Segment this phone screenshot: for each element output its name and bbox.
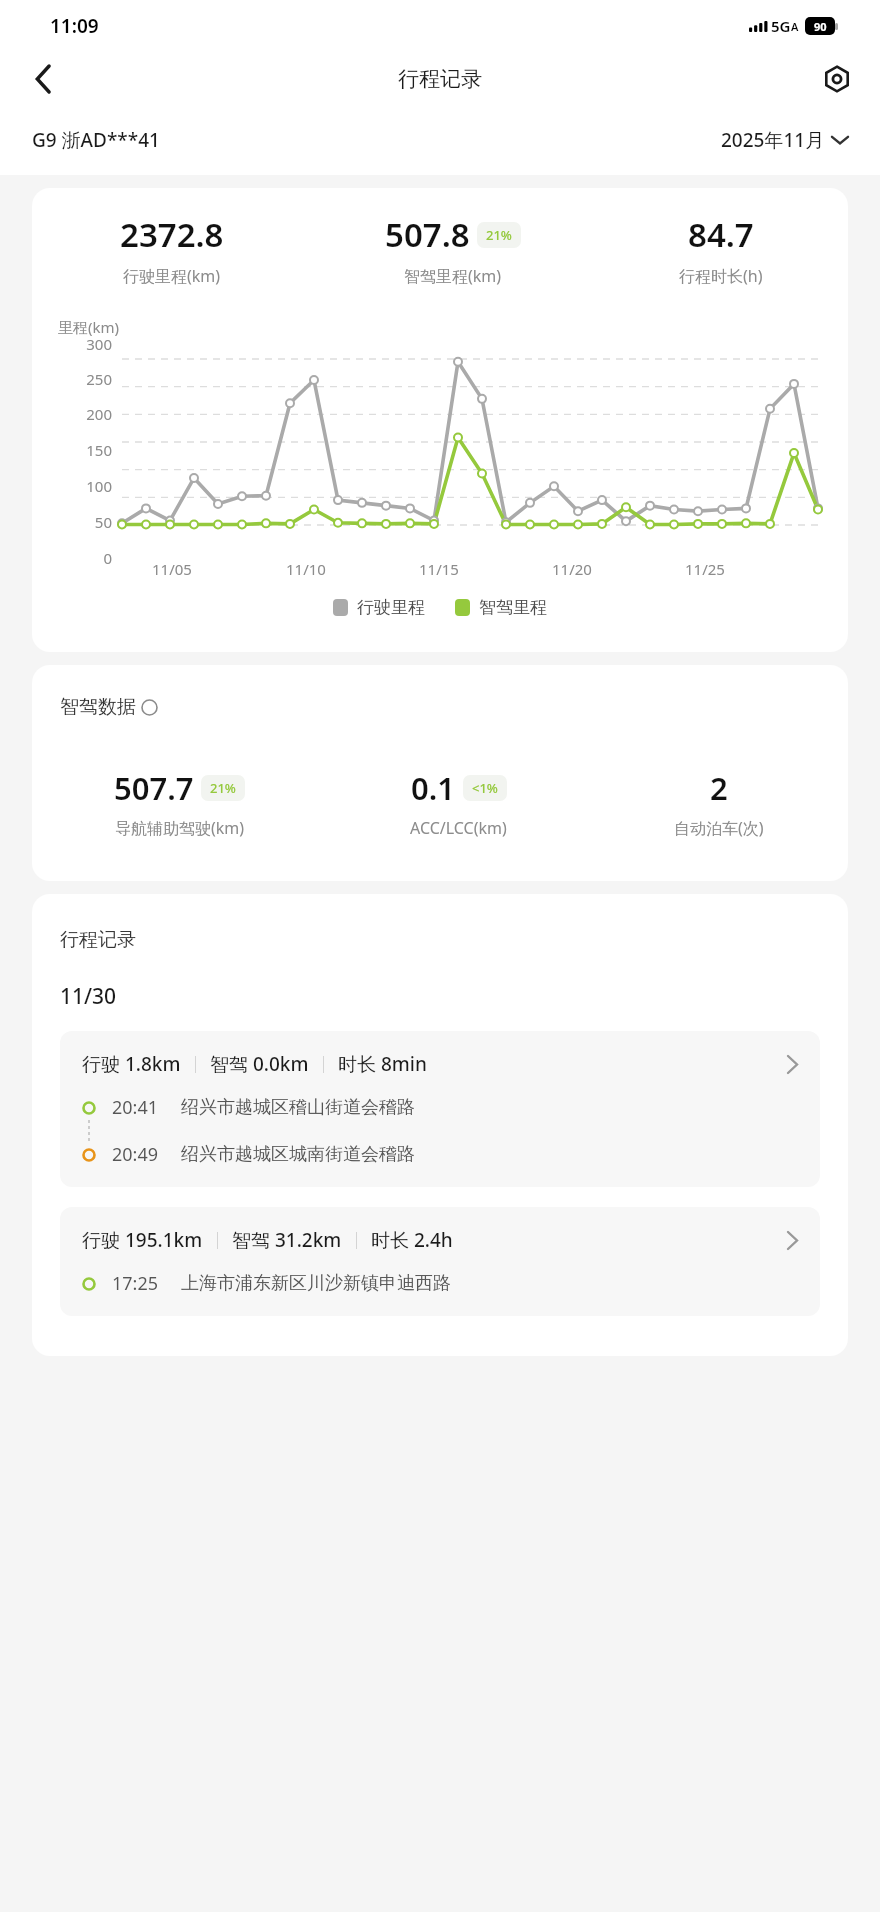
staticText: 20:41 [112, 1095, 159, 1120]
staticText: 11/05 [152, 559, 286, 579]
staticText: 智驾数据 [60, 695, 136, 719]
staticText: 150 [52, 440, 112, 460]
staticText: 自动泊车(次) [674, 817, 764, 839]
staticText: 84.7 [688, 212, 754, 257]
staticText: 11:09 [50, 13, 99, 39]
button[interactable]: Settings [816, 58, 858, 100]
staticText: 50 [52, 512, 112, 532]
staticText: 11/25 [685, 559, 818, 579]
button[interactable]: 2025年11月 [721, 127, 848, 153]
staticText: 20:49 [112, 1142, 159, 1167]
staticText: 行程时长(h) [679, 265, 763, 287]
staticText: 时长 2.4h [371, 1227, 453, 1253]
button[interactable]: Back [24, 59, 64, 99]
staticText: 507.7 [114, 767, 194, 809]
staticText: 智驾里程(km) [404, 265, 502, 287]
staticText: 行驶里程 [357, 597, 425, 618]
staticText: 200 [52, 404, 112, 424]
staticText: 100 [52, 476, 112, 496]
staticText: 250 [52, 369, 112, 389]
staticText: 2372.8 [120, 212, 224, 257]
staticText: 17:25 [112, 1271, 159, 1296]
staticText: 2 [710, 767, 728, 809]
staticText: 行驶里程(km) [123, 265, 221, 287]
staticText: 2025年11月 [721, 127, 825, 153]
staticText: 行驶 1.8km [82, 1051, 181, 1077]
staticText: 里程(km) [58, 317, 120, 337]
staticText: <1% [472, 779, 498, 797]
staticText: 11/30 [60, 982, 117, 1011]
staticText: 0.1 [411, 767, 456, 809]
staticText: 智驾 31.2km [232, 1227, 342, 1253]
staticText: 300 [52, 334, 112, 354]
staticText: 90 [814, 19, 827, 34]
button[interactable]: 行驶 1.8km [60, 1031, 820, 1187]
staticText: 行程记录 [60, 928, 136, 952]
staticText: 507.8 [385, 212, 470, 257]
button[interactable]: 智驾数据 [60, 695, 158, 719]
staticText: 11/15 [419, 559, 552, 579]
staticText: 行程记录 [398, 66, 482, 92]
staticText: G9 浙AD***41 [32, 127, 160, 153]
staticText: 0 [52, 548, 112, 568]
staticText: 导航辅助驾驶(km) [115, 817, 245, 839]
staticText: 绍兴市越城区稽山街道会稽路 [181, 1096, 415, 1119]
staticText: ACC/LCC(km) [410, 817, 507, 839]
staticText: A [791, 19, 799, 34]
other: Info [141, 699, 158, 716]
staticText: 21% [486, 226, 512, 244]
staticText: 11/10 [286, 559, 419, 579]
staticText: 智驾 0.0km [210, 1051, 309, 1077]
staticText: 21% [210, 779, 236, 797]
staticText: 时长 8min [338, 1051, 427, 1077]
staticText: 11/20 [552, 559, 685, 579]
staticText: 5G [771, 16, 791, 36]
staticText: 绍兴市越城区城南街道会稽路 [181, 1143, 415, 1166]
staticText: 上海市浦东新区川沙新镇申迪西路 [181, 1272, 451, 1295]
button[interactable]: 行驶 195.1km [60, 1207, 820, 1316]
staticText: 智驾里程 [479, 597, 547, 618]
staticText: 行驶 195.1km [82, 1227, 203, 1253]
